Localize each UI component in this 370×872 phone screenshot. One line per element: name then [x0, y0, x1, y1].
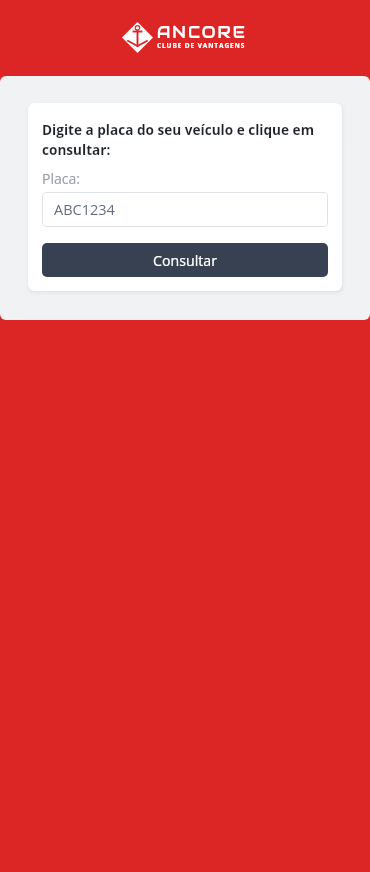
- staticText: ANCORE: [157, 22, 247, 42]
- staticText: CLUBE DE VANTAGENS: [157, 41, 246, 50]
- button[interactable]: Ancore Clube de Vantagens: [121, 21, 247, 54]
- staticText: ABC1234: [54, 200, 115, 220]
- button[interactable]: ABC1234: [42, 192, 328, 227]
- staticText: Placa:: [42, 169, 80, 188]
- button[interactable]: Consultar: [42, 243, 328, 277]
- staticText: Consultar: [153, 251, 217, 270]
- staticText: Digite a placa do seu veículo e clique e…: [42, 120, 328, 159]
